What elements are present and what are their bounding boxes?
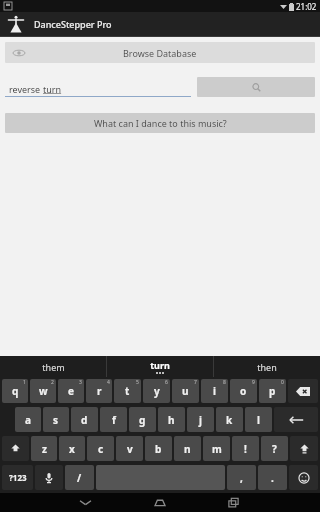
button[interactable]: w: [30, 379, 56, 403]
staticText: y: [154, 384, 160, 398]
button[interactable]: s: [43, 407, 69, 432]
staticText: 5: [136, 379, 139, 386]
button[interactable]: n: [174, 436, 201, 461]
button[interactable]: l: [245, 407, 272, 432]
button[interactable]: Hide keyboard: [65, 493, 106, 512]
staticText: s: [53, 413, 59, 427]
staticText: ?123: [9, 472, 27, 483]
staticText: d: [81, 413, 88, 427]
staticText: o: [240, 384, 247, 398]
button[interactable]: Recent apps: [213, 493, 254, 512]
staticText: them: [42, 361, 65, 373]
button[interactable]: What can I dance to this music?: [5, 113, 315, 133]
button[interactable]: Voice input: [35, 465, 63, 490]
staticText: v: [127, 442, 133, 456]
button[interactable]: q: [2, 379, 28, 403]
button[interactable]: v: [116, 436, 143, 461]
button[interactable]: b: [145, 436, 172, 461]
staticText: 21:02: [296, 1, 317, 12]
button[interactable]: a: [15, 407, 41, 432]
staticText: 6: [165, 379, 168, 386]
staticText: turn: [150, 359, 170, 371]
staticText: .: [271, 471, 274, 485]
button[interactable]: c: [87, 436, 114, 461]
button[interactable]: z: [31, 436, 57, 461]
staticText: ,: [240, 471, 243, 485]
staticText: What can I dance to this music?: [94, 117, 227, 129]
button[interactable]: then: [214, 356, 320, 377]
button[interactable]: m: [203, 436, 230, 461]
staticText: Browse Database: [123, 47, 197, 59]
button[interactable]: Search: [197, 77, 315, 97]
staticText: reverse: [9, 83, 43, 95]
button[interactable]: g: [129, 407, 156, 432]
staticText: l: [257, 413, 260, 427]
staticText: p: [269, 384, 276, 398]
button[interactable]: ?: [261, 436, 288, 461]
staticText: m: [212, 442, 222, 456]
staticText: DanceStepper Pro: [34, 18, 112, 30]
button[interactable]: f: [100, 407, 127, 432]
button[interactable]: .: [258, 465, 287, 490]
button[interactable]: d: [71, 407, 98, 432]
staticText: then: [257, 361, 277, 373]
staticText: f: [112, 413, 116, 427]
staticText: q: [12, 384, 19, 398]
staticText: 0: [281, 379, 284, 386]
button[interactable]: i: [201, 379, 228, 403]
button[interactable]: x: [59, 436, 85, 461]
staticText: u: [182, 384, 189, 398]
button[interactable]: Shift: [2, 436, 29, 461]
staticText: 8: [223, 379, 226, 386]
button[interactable]: p: [259, 379, 286, 403]
button[interactable]: Backspace: [288, 379, 318, 403]
button[interactable]: ?123: [2, 465, 33, 490]
button[interactable]: them: [0, 356, 106, 377]
staticText: k: [226, 413, 233, 427]
button[interactable]: h: [158, 407, 185, 432]
button[interactable]: k: [216, 407, 243, 432]
staticText: 2: [51, 379, 54, 386]
staticText: n: [184, 442, 191, 456]
staticText: t: [125, 384, 130, 398]
button[interactable]: y: [143, 379, 170, 403]
staticText: e: [68, 384, 74, 398]
button[interactable]: Browse Database: [5, 42, 315, 63]
button[interactable]: o: [230, 379, 257, 403]
button[interactable]: Enter: [274, 407, 318, 432]
staticText: ?: [272, 442, 277, 456]
button[interactable]: /: [65, 465, 94, 490]
button[interactable]: Emoji: [289, 465, 318, 490]
staticText: w: [39, 384, 48, 398]
staticText: z: [42, 442, 47, 456]
button[interactable]: j: [187, 407, 214, 432]
button[interactable]: u: [172, 379, 199, 403]
staticText: j: [199, 413, 202, 427]
staticText: h: [168, 413, 175, 427]
staticText: 9: [252, 379, 255, 386]
staticText: r: [97, 384, 102, 398]
staticText: a: [25, 413, 31, 427]
staticText: c: [98, 442, 104, 456]
staticText: turn: [43, 83, 62, 95]
staticText: 1: [23, 379, 26, 386]
staticText: !: [244, 442, 247, 456]
button[interactable]: r: [86, 379, 112, 403]
staticText: x: [69, 442, 75, 456]
staticText: 4: [107, 379, 110, 386]
staticText: /: [77, 471, 82, 485]
button[interactable]: e: [58, 379, 84, 403]
staticText: b: [155, 442, 162, 456]
button[interactable]: turn: [107, 356, 213, 377]
staticText: i: [213, 384, 216, 398]
staticText: 7: [194, 379, 197, 386]
button[interactable]: ,: [227, 465, 256, 490]
button[interactable]: t: [114, 379, 141, 403]
staticText: g: [139, 413, 146, 427]
button[interactable]: !: [232, 436, 259, 461]
staticText: 3: [79, 379, 82, 386]
button[interactable]: Home: [139, 493, 180, 512]
button[interactable]: Shift: [290, 436, 318, 461]
